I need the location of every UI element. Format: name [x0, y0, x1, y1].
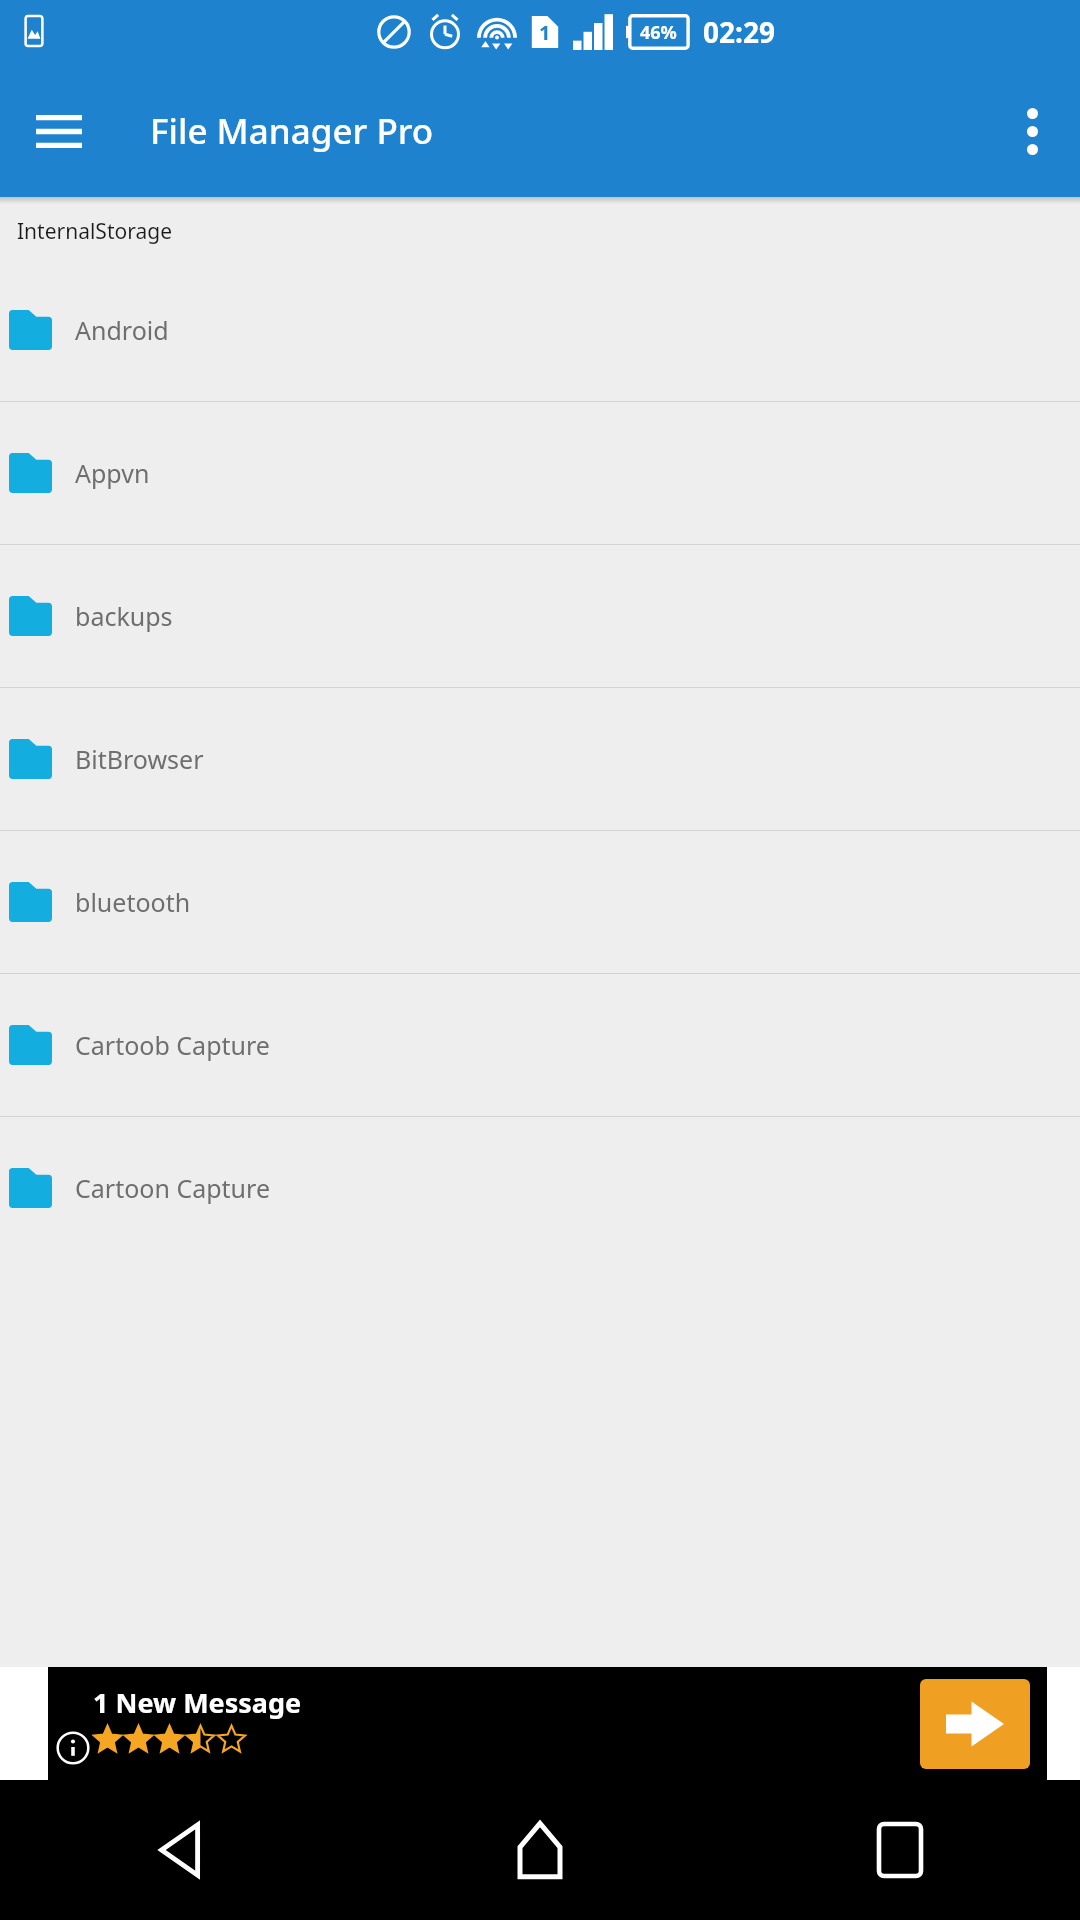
staticText: 02:29: [703, 13, 775, 51]
staticText: Android: [75, 313, 169, 347]
button[interactable]: Back: [0, 1780, 360, 1920]
button[interactable]: backups: [0, 545, 1080, 687]
staticText: 46%: [640, 20, 677, 45]
staticText: Appvn: [75, 456, 150, 490]
staticText: 1 New Message: [93, 1684, 302, 1721]
button[interactable]: Home: [360, 1780, 720, 1920]
staticText: backups: [75, 599, 173, 633]
button[interactable]: Android: [0, 259, 1080, 401]
button[interactable]: Open advertisement: [920, 1679, 1030, 1769]
staticText: 1: [539, 19, 551, 46]
staticText: bluetooth: [75, 885, 191, 919]
staticText: InternalStorage: [17, 217, 172, 246]
button[interactable]: 1 New Message: [48, 1667, 1047, 1780]
staticText: Cartoon Capture: [75, 1171, 270, 1205]
staticText: Cartoob Capture: [75, 1028, 270, 1062]
button[interactable]: Recent apps: [720, 1780, 1080, 1920]
button[interactable]: Appvn: [0, 402, 1080, 544]
staticText: BitBrowser: [75, 742, 204, 776]
button[interactable]: Open navigation drawer: [24, 96, 94, 166]
button[interactable]: Cartoob Capture: [0, 974, 1080, 1116]
button[interactable]: Cartoon Capture: [0, 1117, 1080, 1259]
button[interactable]: More options: [996, 95, 1068, 167]
staticText: File Manager Pro: [150, 107, 434, 155]
button[interactable]: BitBrowser: [0, 688, 1080, 830]
button[interactable]: bluetooth: [0, 831, 1080, 973]
